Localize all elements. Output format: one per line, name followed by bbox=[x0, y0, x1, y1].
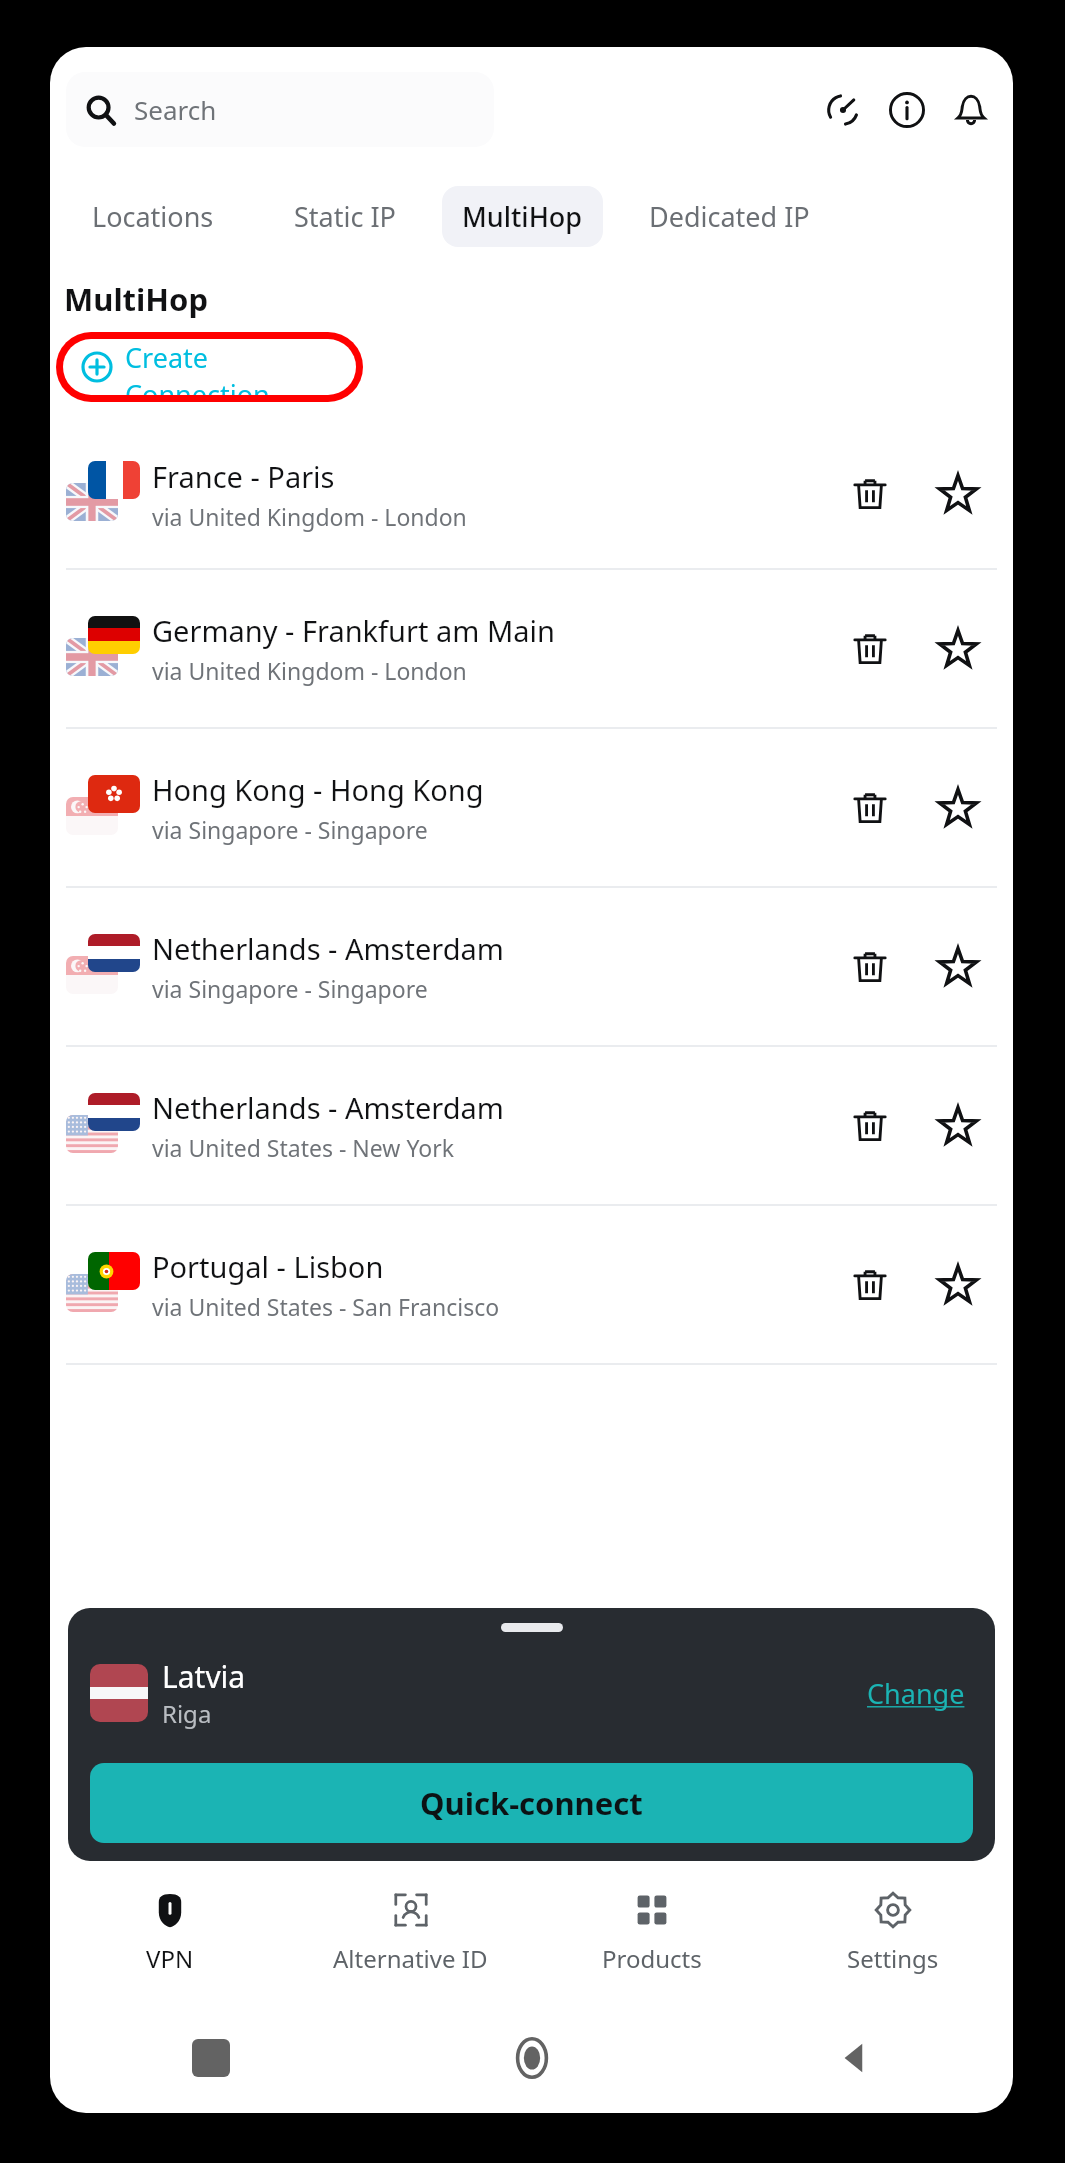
staticText: Latvia bbox=[162, 1656, 246, 1697]
staticText: via United Kingdom - London bbox=[152, 655, 467, 686]
staticText: via Singapore - Singapore bbox=[152, 973, 428, 1004]
staticText: Portugal - Lisbon bbox=[152, 1247, 384, 1286]
button[interactable]: Favorite bbox=[923, 1091, 993, 1161]
staticText: Dedicated IP bbox=[649, 198, 810, 235]
button[interactable]: Delete bbox=[835, 614, 905, 684]
button[interactable]: Delete bbox=[835, 1091, 905, 1161]
button[interactable]: Home bbox=[371, 2003, 692, 2113]
button[interactable]: Change bbox=[859, 1667, 973, 1720]
staticText: Products bbox=[602, 1942, 702, 1975]
button[interactable]: Netherlands - Amsterdam bbox=[50, 888, 1013, 1045]
button[interactable]: Locations bbox=[72, 186, 234, 247]
staticText: France - Paris bbox=[152, 457, 335, 496]
staticText: MultiHop bbox=[64, 278, 209, 320]
staticText: VPN bbox=[146, 1942, 194, 1975]
button[interactable]: Recent apps bbox=[50, 2003, 371, 2113]
staticText: via United Kingdom - London bbox=[152, 501, 467, 532]
staticText: MultiHop bbox=[462, 198, 583, 235]
button[interactable]: Hong Kong - Hong Kong bbox=[50, 729, 1013, 886]
button[interactable]: MultiHop bbox=[442, 186, 603, 247]
staticText: Search bbox=[134, 92, 217, 127]
button[interactable]: France - Paris bbox=[50, 420, 1013, 568]
button[interactable]: Portugal - Lisbon bbox=[50, 1206, 1013, 1363]
staticText: via United States - San Francisco bbox=[152, 1291, 500, 1322]
staticText: Change bbox=[867, 1675, 965, 1712]
button[interactable]: Delete bbox=[835, 459, 905, 529]
button[interactable]: Alternative ID bbox=[290, 1861, 531, 2003]
staticText: Create Connection bbox=[125, 339, 356, 395]
staticText: Netherlands - Amsterdam bbox=[152, 929, 504, 968]
button[interactable]: Speed test bbox=[817, 84, 869, 136]
staticText: Locations bbox=[92, 198, 214, 235]
button[interactable]: Quick-connect bbox=[90, 1763, 973, 1843]
staticText: Alternative ID bbox=[333, 1942, 488, 1975]
button[interactable]: Delete bbox=[835, 932, 905, 1002]
button[interactable]: Netherlands - Amsterdam bbox=[50, 1047, 1013, 1204]
button[interactable]: Favorite bbox=[923, 459, 993, 529]
staticText: Hong Kong - Hong Kong bbox=[152, 770, 484, 809]
button[interactable]: Favorite bbox=[923, 773, 993, 843]
staticText: Settings bbox=[847, 1942, 939, 1975]
staticText: Germany - Frankfurt am Main bbox=[152, 611, 555, 650]
button[interactable]: Favorite bbox=[923, 1250, 993, 1320]
button[interactable]: Dedicated IP bbox=[629, 186, 830, 247]
staticText: Quick-connect bbox=[420, 1782, 643, 1824]
button[interactable]: Settings bbox=[772, 1861, 1013, 2003]
button[interactable]: Products bbox=[531, 1861, 772, 2003]
button[interactable]: Static IP bbox=[274, 186, 416, 247]
button[interactable]: Favorite bbox=[923, 932, 993, 1002]
button[interactable]: Germany - Frankfurt am Main bbox=[50, 570, 1013, 727]
button[interactable]: Back bbox=[692, 2003, 1013, 2113]
button[interactable]: Favorite bbox=[923, 614, 993, 684]
button[interactable]: VPN bbox=[50, 1861, 290, 2003]
staticText: Netherlands - Amsterdam bbox=[152, 1088, 504, 1127]
button[interactable]: Delete bbox=[835, 1250, 905, 1320]
staticText: Static IP bbox=[294, 198, 396, 235]
button[interactable]: Delete bbox=[835, 773, 905, 843]
staticText: via United States - New York bbox=[152, 1132, 454, 1163]
button[interactable]: Information bbox=[881, 84, 933, 136]
button[interactable]: Create Connection bbox=[63, 339, 356, 395]
staticText: Riga bbox=[162, 1697, 212, 1730]
staticText: via Singapore - Singapore bbox=[152, 814, 428, 845]
button[interactable]: Notifications bbox=[945, 84, 997, 136]
button[interactable]: Search bbox=[66, 72, 494, 147]
